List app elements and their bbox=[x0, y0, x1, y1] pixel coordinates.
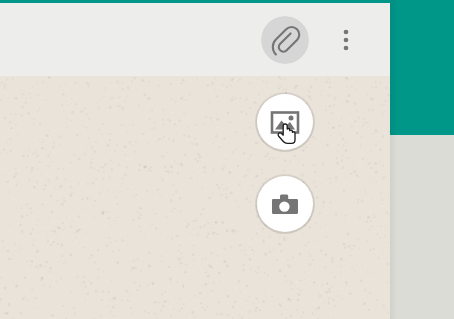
button[interactable]: Attach bbox=[261, 16, 309, 64]
button[interactable]: More options bbox=[330, 16, 362, 64]
button[interactable]: Take photo bbox=[255, 174, 315, 234]
button[interactable]: Insert image bbox=[255, 92, 315, 152]
